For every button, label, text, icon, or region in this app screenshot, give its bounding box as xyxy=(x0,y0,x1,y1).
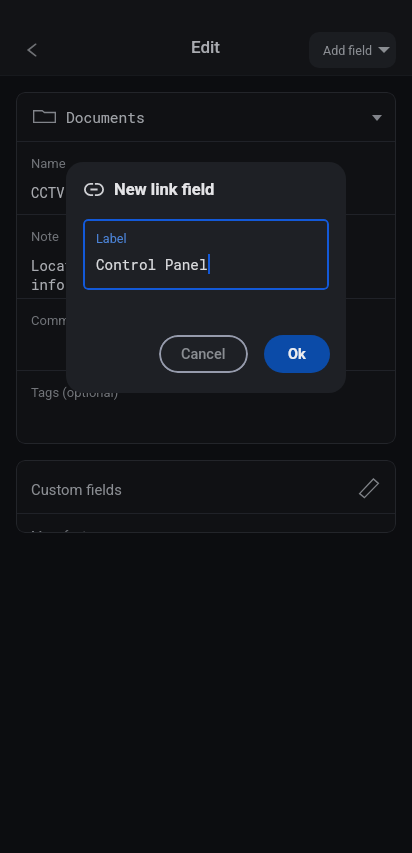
button[interactable]: Edit custom fields xyxy=(355,474,383,502)
staticText: Edit xyxy=(191,37,221,57)
button[interactable]: Back xyxy=(8,26,56,74)
staticText: Name xyxy=(31,156,66,171)
button[interactable]: Name xyxy=(16,142,396,214)
staticText: CCTV xyxy=(31,183,65,201)
staticText: Manufacturer xyxy=(31,528,110,533)
button[interactable]: Custom fields xyxy=(16,460,396,513)
button[interactable]: Label xyxy=(83,219,329,290)
staticText: Custom fields xyxy=(31,481,122,498)
staticText: New link field xyxy=(114,180,215,199)
staticText: Location info xyxy=(31,256,99,294)
staticText: Documents xyxy=(66,108,145,127)
staticText: Control Panel xyxy=(96,255,208,274)
button[interactable]: Cancel xyxy=(159,335,248,373)
button[interactable]: Tags (optional) xyxy=(16,371,396,444)
staticText: Add field xyxy=(323,43,372,58)
staticText: Label xyxy=(96,231,127,246)
button[interactable]: Ok xyxy=(264,335,330,373)
button[interactable]: Documents xyxy=(16,92,396,141)
button[interactable]: Add field xyxy=(309,32,396,68)
staticText: Ok xyxy=(288,346,306,363)
button[interactable]: Note xyxy=(16,215,396,298)
staticText: Comment xyxy=(31,313,89,328)
staticText: Cancel xyxy=(181,346,226,363)
button[interactable]: Comment xyxy=(16,299,396,370)
staticText: Note xyxy=(31,229,59,244)
staticText: Tags (optional) xyxy=(31,385,119,400)
